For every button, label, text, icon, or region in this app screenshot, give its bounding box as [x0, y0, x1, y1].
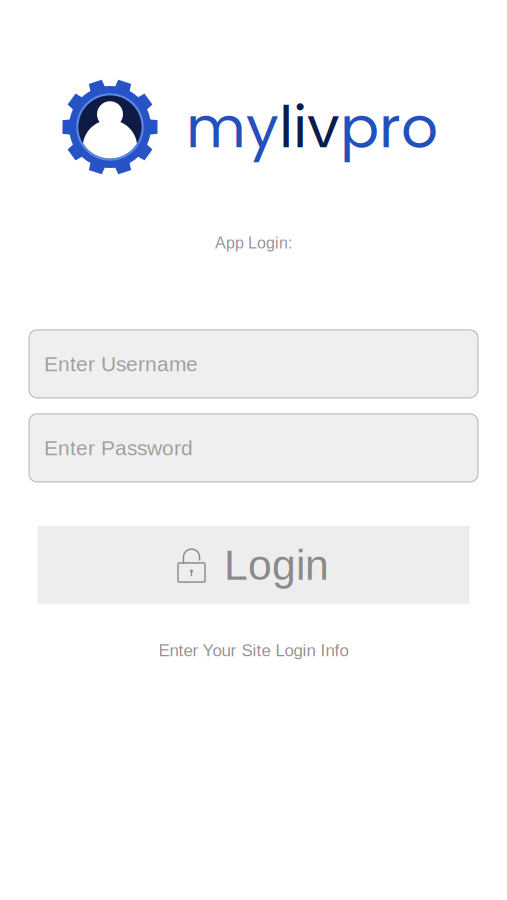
- staticText: liv: [279, 86, 340, 168]
- staticText: Enter Your Site Login Info: [158, 641, 348, 660]
- staticText: App Login:: [215, 234, 292, 252]
- staticText: pro: [340, 86, 438, 168]
- button[interactable]: Login: [37, 526, 469, 604]
- button[interactable]: Enter Password: [29, 414, 478, 482]
- button[interactable]: Enter Username: [29, 330, 478, 398]
- staticText: Enter Password: [44, 436, 193, 460]
- staticText: Login: [224, 541, 329, 589]
- staticText: my: [186, 86, 279, 168]
- staticText: Enter Username: [44, 352, 198, 376]
